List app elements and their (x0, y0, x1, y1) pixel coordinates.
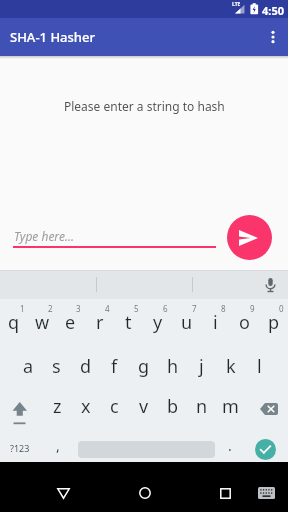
staticText: a (23, 354, 34, 379)
staticText: y (153, 310, 163, 335)
button[interactable]: 8 (201, 300, 230, 344)
staticText: LTE (232, 1, 241, 8)
button[interactable]: c (100, 384, 129, 428)
button[interactable] (0, 384, 43, 428)
staticText: w (35, 310, 50, 335)
staticText: ?123 (10, 442, 30, 454)
staticText: o (239, 310, 250, 335)
staticText: 7 (192, 303, 197, 314)
staticText: 9 (250, 303, 255, 314)
staticText: p (268, 310, 280, 335)
staticText: l (257, 354, 262, 379)
button[interactable]: j (187, 344, 216, 388)
button[interactable]: h (158, 344, 187, 388)
button[interactable]: 4 (85, 300, 114, 344)
staticText: 0 (279, 303, 284, 314)
staticText: 6 (163, 303, 168, 314)
button[interactable] (206, 475, 244, 511)
button[interactable]: 9 (230, 300, 259, 344)
staticText: n (196, 394, 208, 419)
button[interactable]: f (100, 344, 129, 388)
button[interactable] (260, 275, 280, 295)
staticText: 2 (48, 303, 53, 314)
staticText: 4:50 (262, 3, 284, 18)
button[interactable] (44, 475, 82, 511)
staticText: SHA-1 Hasher (10, 28, 95, 46)
staticText: v (139, 394, 149, 419)
button[interactable]: g (129, 344, 158, 388)
button[interactable]: v (129, 384, 158, 428)
staticText: , (56, 436, 60, 455)
staticText: x (81, 394, 91, 419)
button[interactable]: 2 (28, 300, 56, 344)
button[interactable]: z (43, 384, 71, 428)
button[interactable]: k (216, 344, 245, 388)
staticText: s (52, 354, 61, 379)
button[interactable]: b (158, 384, 187, 428)
staticText: 8 (221, 303, 226, 314)
button[interactable]: 7 (172, 300, 201, 344)
button[interactable]: d (71, 344, 100, 388)
button[interactable]: 1 (0, 300, 28, 344)
button[interactable]: x (71, 384, 100, 428)
button[interactable] (258, 18, 288, 56)
staticText: u (181, 310, 193, 335)
staticText: i (213, 310, 218, 335)
staticText: 1 (20, 303, 25, 314)
staticText: 3 (76, 303, 81, 314)
button[interactable]: n (187, 384, 216, 428)
button[interactable] (227, 215, 272, 260)
button[interactable] (252, 477, 280, 509)
staticText: e (65, 310, 76, 335)
button[interactable] (245, 384, 288, 428)
staticText: t (125, 310, 132, 335)
staticText: r (96, 310, 104, 335)
staticText: Please enter a string to hash (64, 98, 225, 114)
button[interactable]: 3 (56, 300, 85, 344)
staticText: q (8, 310, 20, 335)
staticText: b (167, 394, 179, 419)
button[interactable]: l (245, 344, 274, 388)
staticText: m (222, 394, 239, 419)
button[interactable]: 5 (114, 300, 143, 344)
button[interactable]: ?123 (0, 434, 40, 462)
button[interactable] (255, 439, 276, 460)
button[interactable]: 0 (259, 300, 288, 344)
staticText: Type here... (14, 228, 75, 244)
staticText: j (199, 354, 204, 379)
button[interactable] (126, 475, 164, 511)
staticText: f (111, 354, 118, 379)
staticText: 4 (105, 303, 110, 314)
button[interactable]: s (42, 344, 71, 388)
staticText: h (167, 354, 179, 379)
button[interactable]: . (218, 434, 242, 462)
staticText: g (138, 354, 150, 379)
staticText: z (53, 394, 62, 419)
staticText: k (226, 354, 236, 379)
button[interactable]: , (46, 434, 70, 462)
button[interactable]: 6 (143, 300, 172, 344)
staticText: . (228, 436, 232, 455)
staticText: d (80, 354, 92, 379)
staticText: c (110, 394, 119, 419)
button[interactable]: a (14, 344, 42, 388)
button[interactable]: m (216, 384, 245, 428)
staticText: 5 (134, 303, 139, 314)
